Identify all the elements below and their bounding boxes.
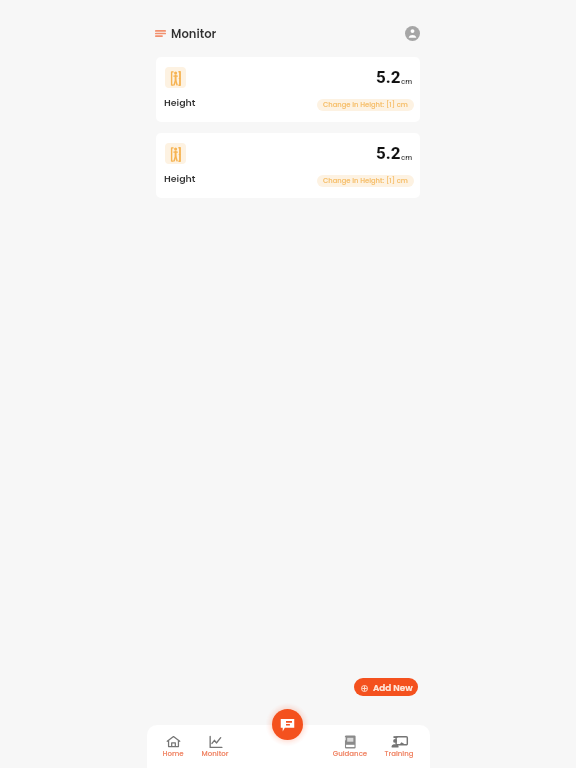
button[interactable]: Monitor	[191, 730, 239, 764]
staticText: Change in Height: [1] cm	[323, 100, 408, 110]
staticText: Change in Height: [1] cm	[323, 176, 408, 186]
staticText: Monitor	[171, 26, 217, 42]
staticText: Height	[164, 96, 196, 109]
staticText: cm	[401, 153, 413, 162]
staticText: 5.2	[376, 67, 401, 87]
button[interactable]: Home	[149, 730, 197, 764]
button[interactable]: Height	[156, 57, 420, 122]
staticText: cm	[401, 77, 413, 86]
staticText: Add New	[373, 682, 413, 694]
button[interactable]: Account	[403, 24, 422, 43]
staticText: Height	[164, 172, 196, 185]
staticText: Guidance	[326, 749, 374, 759]
staticText: Monitor	[191, 749, 239, 759]
staticText: Training	[375, 749, 423, 759]
button[interactable]: Menu	[149, 24, 171, 42]
button[interactable]: Height	[156, 133, 420, 198]
button[interactable]: Chat	[272, 709, 303, 740]
button[interactable]: Guidance	[326, 730, 374, 764]
staticText: 5.2	[376, 143, 401, 163]
staticText: Home	[149, 749, 197, 759]
button[interactable]: Training	[375, 730, 423, 764]
button[interactable]: Add New	[354, 678, 418, 696]
